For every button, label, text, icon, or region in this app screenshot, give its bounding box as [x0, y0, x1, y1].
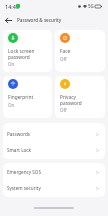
staticText: Emergency SOS	[7, 169, 41, 175]
button[interactable]: Privacy password	[55, 76, 105, 118]
staticText: On	[8, 102, 15, 108]
staticText: Passwords	[7, 131, 30, 137]
staticText: Off	[60, 107, 67, 113]
button[interactable]: Back	[0, 12, 16, 28]
button[interactable]: Fingerprint	[3, 76, 52, 118]
button[interactable]: Smart Lock	[3, 142, 105, 158]
staticText: Privacy password	[60, 94, 82, 106]
staticText: Password & security	[17, 17, 62, 23]
staticText: 14:43	[5, 3, 20, 10]
button[interactable]: Passwords	[3, 126, 105, 142]
staticText: Off	[60, 56, 67, 62]
staticText: Lock screen password	[8, 48, 35, 60]
staticText: Smart Lock	[7, 147, 31, 153]
staticText: Fingerprint	[8, 94, 34, 101]
button[interactable]: Emergency SOS	[3, 164, 105, 180]
staticText: System security	[7, 185, 41, 191]
button[interactable]: System security	[3, 180, 105, 196]
staticText: 5G	[88, 3, 94, 9]
button[interactable]: Face	[55, 30, 105, 72]
staticText: Face	[60, 48, 71, 55]
staticText: On	[8, 61, 15, 67]
button[interactable]: Lock screen password	[3, 30, 52, 72]
